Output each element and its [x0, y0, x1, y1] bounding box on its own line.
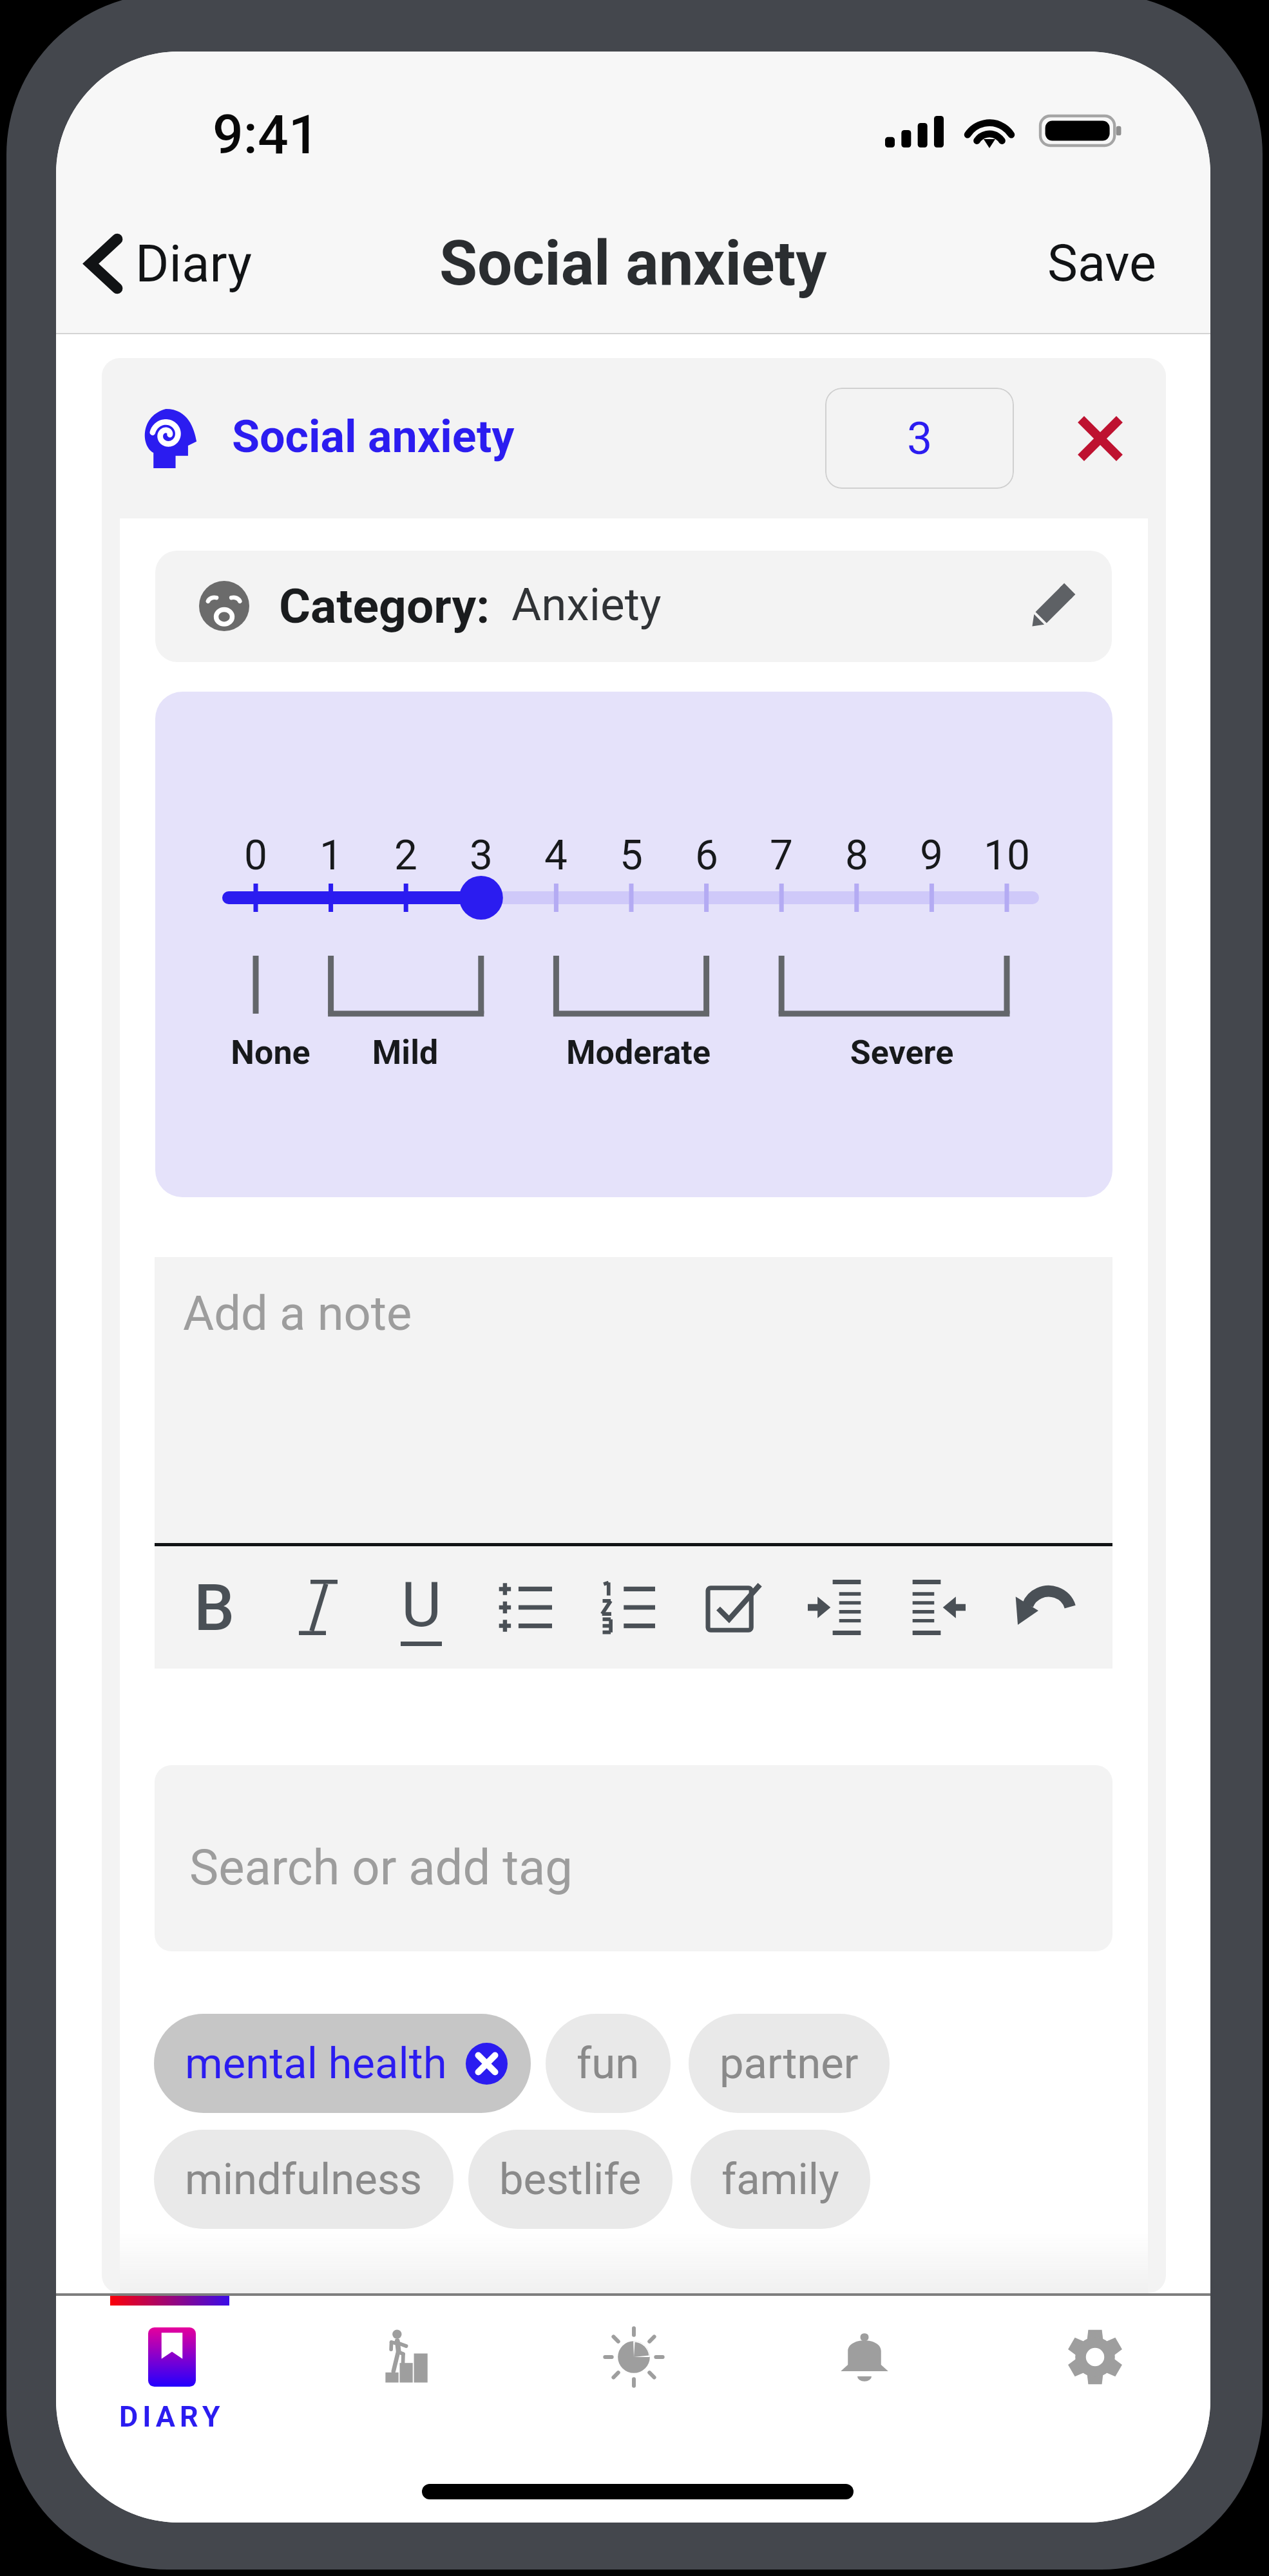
button[interactable]: Undo [990, 1546, 1093, 1669]
button[interactable]: bestlife [468, 2130, 673, 2229]
button[interactable]: Settings [980, 2296, 1210, 2523]
staticText: 7 [743, 831, 820, 880]
staticText: Category: [279, 578, 490, 634]
staticText: 4 [517, 831, 595, 880]
staticText: bestlife [499, 2154, 642, 2205]
staticText: 3 [443, 831, 520, 880]
staticText: 3 [907, 412, 933, 465]
button[interactable]: Search or add tag [155, 1765, 1112, 1951]
staticText: fun [577, 2038, 640, 2089]
staticText: family [721, 2154, 839, 2205]
button[interactable]: Remove symptom [1065, 403, 1136, 474]
staticText: Social anxiety [232, 410, 515, 463]
button[interactable]: mental health [154, 2014, 531, 2113]
button[interactable]: Reminders [749, 2296, 980, 2523]
staticText: 2 [367, 831, 444, 880]
button[interactable]: Bold [163, 1546, 266, 1669]
button[interactable]: Checklist [680, 1546, 783, 1669]
button[interactable]: Activity [287, 2296, 519, 2523]
staticText: 5 [593, 831, 670, 880]
staticText: U [401, 1569, 442, 1642]
button[interactable]: Bulleted list [473, 1546, 577, 1669]
button[interactable]: 3 [825, 388, 1014, 489]
staticText: B [194, 1570, 235, 1645]
staticText: Anxiety [511, 578, 662, 631]
button[interactable]: Add a note [155, 1257, 1112, 1543]
staticText: mental health [185, 2038, 447, 2089]
staticText: 9:41 [213, 103, 320, 166]
button[interactable]: Numbered list [577, 1546, 680, 1669]
staticText: Mild [244, 1033, 566, 1072]
button[interactable]: family [691, 2130, 870, 2229]
button[interactable]: Category: [155, 551, 1112, 662]
staticText: partner [720, 2038, 859, 2089]
staticText: Diary [135, 234, 253, 294]
staticText: 0 [217, 831, 294, 880]
button[interactable]: Decrease indent [887, 1546, 990, 1669]
button[interactable]: mindfulness [154, 2130, 453, 2229]
button[interactable]: Increase indent [783, 1546, 886, 1669]
button[interactable]: partner [689, 2014, 890, 2113]
staticText: None [155, 1033, 432, 1072]
staticText: 8 [818, 831, 895, 880]
button[interactable]: Insights [519, 2296, 749, 2523]
staticText: Severe [741, 1033, 1063, 1072]
staticText: Search or add tag [189, 1839, 573, 1896]
button[interactable]: Diary [71, 194, 269, 333]
staticText: 10 [968, 831, 1045, 880]
button[interactable]: Diary [56, 2296, 287, 2523]
staticText: Social anxiety [439, 227, 827, 300]
staticText: Add a note [183, 1285, 412, 1341]
staticText: mindfulness [185, 2154, 423, 2205]
staticText: DIARY [119, 2400, 225, 2434]
button[interactable]: Italic [267, 1546, 370, 1669]
staticText: 6 [668, 831, 745, 880]
button[interactable]: fun [546, 2014, 671, 2113]
button[interactable]: Edit category [1022, 572, 1087, 636]
staticText: 9 [893, 831, 970, 880]
staticText: Moderate [477, 1033, 799, 1072]
staticText: 1 [292, 831, 370, 880]
button[interactable]: Underline [370, 1546, 473, 1669]
button[interactable]: Save [1023, 214, 1210, 313]
